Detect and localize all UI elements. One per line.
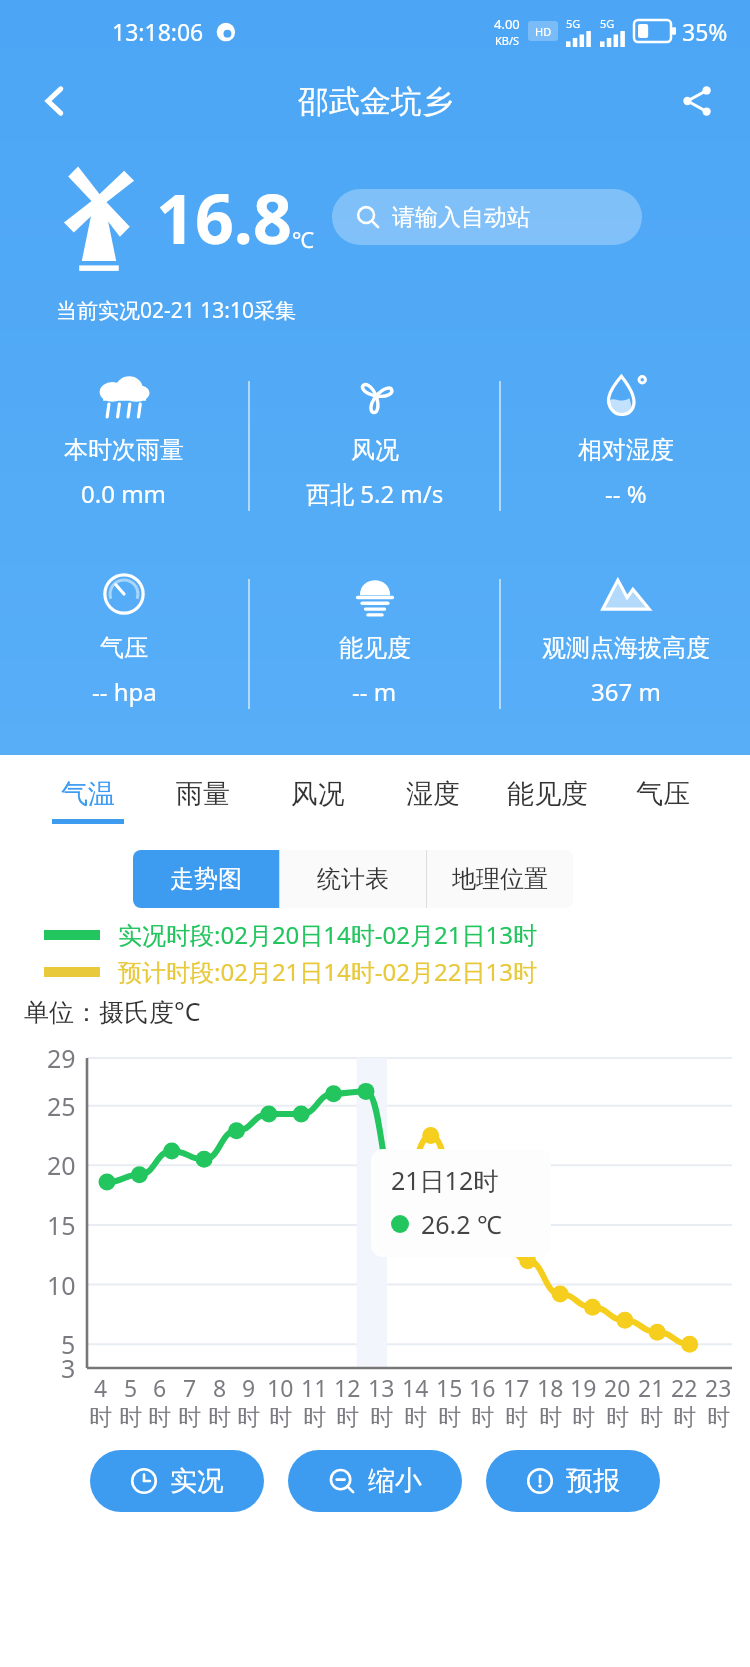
button[interactable]: Share — [672, 76, 722, 126]
staticText: 时 — [178, 1403, 201, 1432]
staticText: 时 — [269, 1403, 292, 1432]
staticText: 20 — [604, 1372, 631, 1403]
button[interactable]: 气压 — [0, 559, 248, 729]
staticText: 5 — [124, 1372, 138, 1403]
button[interactable]: 走势图 — [133, 850, 279, 908]
staticText: 气压 — [100, 633, 148, 663]
staticText: 7 — [183, 1372, 197, 1403]
button[interactable]: 实况 — [90, 1450, 264, 1512]
staticText: 湿度 — [406, 777, 460, 811]
staticText: 15 — [436, 1372, 463, 1403]
staticText: 本时次雨量 — [64, 435, 184, 465]
staticText: 25 — [47, 1089, 76, 1123]
staticText: 13:18:06 — [112, 16, 204, 47]
staticText: 6 — [153, 1372, 167, 1403]
staticText: 相对湿度 — [578, 435, 674, 465]
button[interactable]: 地理位置 — [427, 850, 573, 908]
staticText: -- % — [605, 477, 647, 510]
staticText: 10 — [267, 1372, 294, 1403]
staticText: 10 — [47, 1268, 76, 1302]
staticText: 时 — [370, 1403, 393, 1432]
staticText: 单位：摄氏度°C — [24, 994, 201, 1028]
staticText: 0.0 mm — [81, 477, 167, 510]
staticText: 时 — [640, 1403, 663, 1432]
staticText: 实况时段:02月20日14时-02月21日13时 — [118, 918, 537, 951]
staticText: 气温 — [61, 777, 115, 811]
staticText: 观测点海拔高度 — [542, 633, 710, 663]
button[interactable]: 请输入自动站 — [332, 189, 642, 245]
staticText: 时 — [336, 1403, 359, 1432]
staticText: 预报 — [566, 1464, 620, 1498]
button[interactable]: 雨量 — [145, 777, 260, 819]
button[interactable]: 能见度 — [250, 559, 499, 729]
staticText: 预计时段:02月21日14时-02月22日13时 — [118, 955, 537, 988]
staticText: 16.8 — [156, 171, 292, 264]
button[interactable]: 缩小 — [288, 1450, 462, 1512]
staticText: 时 — [208, 1403, 231, 1432]
staticText: 能见度 — [339, 633, 411, 663]
button[interactable]: 气温 — [30, 777, 145, 824]
staticText: 35% — [682, 16, 728, 47]
button[interactable]: 风况 — [260, 777, 375, 819]
staticText: 请输入自动站 — [392, 203, 530, 232]
button[interactable]: 风况 — [250, 361, 499, 531]
staticText: 8 — [213, 1372, 227, 1403]
staticText: 时 — [303, 1403, 326, 1432]
staticText: 18 — [537, 1372, 564, 1403]
staticText: 缩小 — [368, 1464, 422, 1498]
staticText: 时 — [539, 1403, 562, 1432]
staticText: 21日12时 — [391, 1163, 499, 1197]
staticText: 时 — [505, 1403, 528, 1432]
staticText: 23 — [705, 1372, 732, 1403]
button[interactable]: 相对湿度 — [501, 361, 750, 531]
staticText: 5G — [566, 16, 581, 31]
button[interactable]: 湿度 — [375, 777, 490, 819]
staticText: HD — [535, 24, 552, 39]
staticText: 时 — [471, 1403, 494, 1432]
staticText: 时 — [438, 1403, 461, 1432]
staticText: 29 — [47, 1041, 76, 1075]
staticText: 时 — [148, 1403, 171, 1432]
staticText: -- hpa — [92, 675, 157, 708]
button[interactable]: Back — [30, 76, 80, 126]
staticText: 15 — [47, 1208, 76, 1242]
staticText: 367 m — [591, 675, 661, 708]
button[interactable]: 气压 — [605, 777, 720, 819]
staticText: 时 — [89, 1403, 112, 1432]
staticText: 11 — [301, 1372, 328, 1403]
staticText: 22 — [671, 1372, 698, 1403]
staticText: 统计表 — [317, 864, 389, 894]
button[interactable]: 本时次雨量 — [0, 361, 248, 531]
staticText: 实况 — [170, 1464, 224, 1498]
staticText: 26.2 ℃ — [421, 1207, 502, 1241]
staticText: 5 — [61, 1327, 76, 1361]
staticText: 4 — [94, 1372, 108, 1403]
staticText: 风况 — [291, 777, 345, 811]
staticText: 时 — [707, 1403, 730, 1432]
staticText: 时 — [673, 1403, 696, 1432]
staticText: ℃ — [292, 224, 314, 254]
staticText: 风况 — [351, 435, 399, 465]
staticText: 时 — [572, 1403, 595, 1432]
staticText: 能见度 — [507, 777, 588, 811]
staticText: 走势图 — [170, 864, 242, 894]
staticText: 4.00 — [494, 15, 520, 33]
staticText: 17 — [503, 1372, 530, 1403]
button[interactable]: 观测点海拔高度 — [501, 559, 750, 729]
staticText: 13 — [368, 1372, 395, 1403]
staticText: 19 — [570, 1372, 597, 1403]
staticText: 时 — [606, 1403, 629, 1432]
button[interactable]: 预报 — [486, 1450, 660, 1512]
staticText: 地理位置 — [452, 864, 548, 894]
staticText: 3 — [61, 1351, 76, 1385]
staticText: 当前实况02-21 13:10采集 — [56, 296, 296, 325]
staticText: 雨量 — [176, 777, 230, 811]
staticText: -- m — [352, 675, 397, 708]
staticText: 20 — [47, 1148, 76, 1182]
staticText: 西北 5.2 m/s — [306, 477, 444, 510]
button[interactable]: 能见度 — [490, 777, 605, 819]
button[interactable]: 统计表 — [280, 850, 426, 908]
staticText: 14 — [402, 1372, 429, 1403]
staticText: 12 — [334, 1372, 361, 1403]
staticText: 时 — [237, 1403, 260, 1432]
